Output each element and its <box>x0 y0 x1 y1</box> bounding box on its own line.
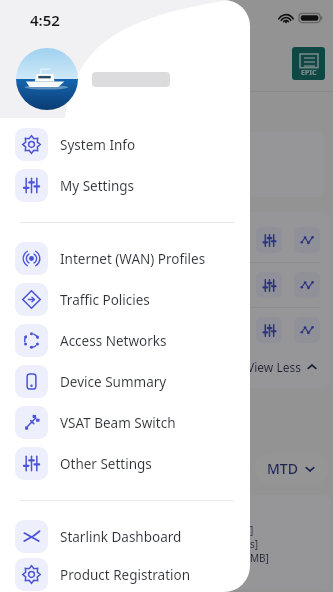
button[interactable]: My Settings <box>0 165 250 206</box>
button[interactable]: Starlink Dashboard <box>0 516 250 557</box>
button[interactable]: Traffic Policies <box>0 279 250 320</box>
staticText: Access Networks <box>60 332 167 350</box>
button[interactable]: EPIC <box>292 47 325 80</box>
staticText: s] <box>250 537 259 551</box>
button[interactable]: Access Networks <box>0 320 250 361</box>
staticText: EPIC <box>301 68 317 78</box>
button[interactable]: Device Summary <box>0 361 250 402</box>
button[interactable]: Chart <box>294 227 320 253</box>
staticText: Product Registration <box>60 566 191 584</box>
button[interactable]: Chart <box>256 317 282 343</box>
button[interactable]: Product Registration <box>0 557 250 592</box>
staticText: 4:52 <box>30 10 60 30</box>
staticText: VSAT Beam Switch <box>60 414 176 432</box>
staticText: MB] <box>250 551 269 565</box>
staticText: Starlink Dashboard <box>60 528 182 546</box>
button[interactable]: Chart <box>294 317 320 343</box>
staticText: MTD <box>267 459 298 478</box>
button[interactable]: MTD <box>267 459 316 478</box>
staticText: System Info <box>60 136 136 154</box>
button[interactable]: Other Settings <box>0 443 250 484</box>
button[interactable] <box>16 40 250 118</box>
staticText: View Less <box>247 359 301 375</box>
staticText: My Settings <box>60 177 135 195</box>
button[interactable]: Internet (WAN) Profiles <box>0 238 250 279</box>
button[interactable]: VSAT Beam Switch <box>0 402 250 443</box>
button[interactable]: System Info <box>0 124 250 165</box>
button[interactable]: Chart <box>256 272 282 298</box>
button[interactable]: Chart <box>294 272 320 298</box>
staticText: Traffic Policies <box>60 291 150 309</box>
staticText: Internet (WAN) Profiles <box>60 250 206 268</box>
staticText: ] <box>250 523 254 537</box>
staticText: Other Settings <box>60 455 152 473</box>
staticText: Device Summary <box>60 373 167 391</box>
button[interactable]: Chart <box>256 227 282 253</box>
